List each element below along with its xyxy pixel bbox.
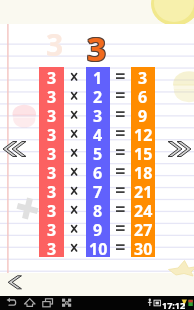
staticText: 9 (138, 105, 148, 124)
staticText: 15 (134, 143, 153, 162)
staticText: 3 (86, 25, 105, 70)
staticText: 3 (46, 24, 64, 65)
staticText: 3 (138, 67, 148, 86)
button[interactable]: Recent apps (41, 296, 55, 310)
staticText: 3 (87, 25, 106, 70)
staticText: 24 (134, 200, 153, 219)
button[interactable]: 3 (0, 219, 194, 238)
staticText: 3 (86, 27, 105, 72)
staticText: 3 (47, 67, 57, 86)
staticText: 3 (47, 219, 57, 238)
staticText: 3 (47, 162, 57, 181)
staticText: 10 (89, 238, 108, 257)
button[interactable]: Screenshot (60, 296, 74, 310)
staticText: 9 (93, 219, 103, 238)
staticText: 3 (87, 26, 106, 71)
button[interactable]: 3 (0, 162, 194, 181)
staticText: 1 (93, 67, 103, 86)
staticText: 3 (47, 105, 57, 124)
button[interactable]: 3 (0, 181, 194, 200)
staticText: 3 (47, 181, 57, 200)
staticText: 12 (134, 124, 153, 143)
staticText: 3 (87, 27, 106, 72)
button[interactable]: 3 (0, 86, 194, 105)
staticText: 3 (47, 124, 57, 143)
button[interactable]: 3 (0, 200, 194, 219)
staticText: 5 (93, 143, 103, 162)
staticText: 3 (47, 200, 57, 219)
staticText: 3 (47, 143, 57, 162)
staticText: 8 (93, 200, 103, 219)
staticText: 3 (86, 26, 105, 71)
staticText: 3 (88, 26, 107, 71)
staticText: 3 (47, 86, 57, 105)
button[interactable]: 3 (0, 105, 194, 124)
staticText: 3 (88, 27, 107, 72)
button[interactable]: 3 (0, 124, 194, 143)
staticText: 3 (93, 105, 103, 124)
staticText: 30 (134, 238, 153, 257)
staticText: 3 (47, 238, 57, 257)
button[interactable]: 3 (0, 238, 194, 257)
button[interactable]: Back (5, 296, 19, 310)
staticText: 6 (93, 162, 103, 181)
button[interactable]: 3 (0, 143, 194, 162)
staticText: 18 (134, 162, 153, 181)
staticText: 3 (88, 25, 107, 70)
staticText: 6 (138, 86, 148, 105)
button[interactable]: Home (23, 296, 37, 310)
staticText: 2 (93, 86, 103, 105)
staticText: 7 (93, 181, 103, 200)
staticText: 21 (134, 181, 153, 200)
staticText: 17:12 (162, 299, 186, 310)
button[interactable]: 3 (0, 67, 194, 86)
staticText: 27 (134, 219, 153, 238)
staticText: 4 (93, 124, 103, 143)
